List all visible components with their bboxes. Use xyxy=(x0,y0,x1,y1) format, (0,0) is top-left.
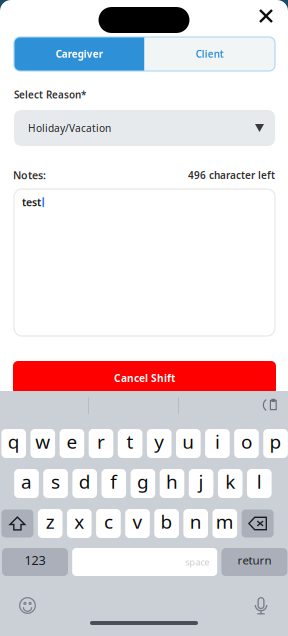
staticText: w xyxy=(35,429,50,454)
staticText: u xyxy=(182,429,194,454)
staticText: Cancel Shift xyxy=(114,371,175,385)
staticText: Caregiver xyxy=(56,47,103,61)
button[interactable]: s xyxy=(43,469,68,498)
staticText: n xyxy=(190,509,202,534)
staticText: b xyxy=(161,509,173,534)
staticText: m xyxy=(216,509,234,534)
button[interactable]: u xyxy=(176,429,201,458)
staticText: s xyxy=(51,469,60,494)
button[interactable]: Client xyxy=(144,37,275,71)
button[interactable]: return xyxy=(221,548,287,576)
staticText: l xyxy=(257,469,262,494)
staticText: y xyxy=(154,429,164,454)
button[interactable]: c xyxy=(96,509,121,538)
staticText: 123 xyxy=(24,551,45,569)
button[interactable]: y xyxy=(147,429,171,458)
staticText: Notes: xyxy=(13,168,46,182)
button[interactable]: x xyxy=(67,509,92,538)
button[interactable]: Dictation xyxy=(253,596,269,615)
button[interactable]: w xyxy=(30,429,55,458)
button[interactable]: f xyxy=(101,469,126,498)
button[interactable]: e xyxy=(60,429,84,458)
button[interactable]: Close xyxy=(253,3,279,29)
button[interactable]: h xyxy=(160,469,184,498)
button[interactable]: m xyxy=(212,509,237,538)
button[interactable]: b xyxy=(154,509,179,538)
staticText: test xyxy=(22,195,41,209)
staticText: i xyxy=(215,429,220,454)
staticText: z xyxy=(46,509,55,534)
button[interactable]: k xyxy=(218,469,242,498)
staticText: t xyxy=(127,429,134,454)
button[interactable]: Delete xyxy=(242,509,274,537)
button[interactable]: Shift xyxy=(1,509,33,537)
staticText: a xyxy=(21,469,32,494)
button[interactable]: Paste xyxy=(260,397,280,413)
button[interactable]: v xyxy=(125,509,150,538)
button[interactable]: Emoji keyboard xyxy=(18,596,37,615)
staticText: h xyxy=(166,469,178,494)
button[interactable]: Cancel Shift xyxy=(13,361,276,395)
button[interactable]: t xyxy=(118,429,142,458)
staticText: q xyxy=(8,429,20,454)
button[interactable]: r xyxy=(89,429,113,458)
staticText: g xyxy=(137,469,149,494)
button[interactable]: n xyxy=(183,509,208,538)
button[interactable]: 123 xyxy=(2,548,68,576)
button[interactable]: o xyxy=(234,429,259,458)
button[interactable]: l xyxy=(247,469,272,498)
staticText: return xyxy=(237,552,271,568)
staticText: Select Reason* xyxy=(14,88,86,101)
staticText: Client xyxy=(196,47,224,61)
button[interactable]: i xyxy=(205,429,230,458)
staticText: 496 character left xyxy=(188,168,275,182)
staticText: v xyxy=(132,509,142,534)
staticText: k xyxy=(225,469,235,494)
button[interactable]: Holiday/Vacation xyxy=(14,110,275,146)
button[interactable]: a xyxy=(14,469,39,498)
staticText: f xyxy=(110,469,117,494)
button[interactable]: Caregiver xyxy=(14,37,144,71)
button[interactable]: p xyxy=(263,429,288,458)
staticText: j xyxy=(199,469,204,494)
staticText: p xyxy=(270,429,282,454)
staticText: r xyxy=(97,429,105,454)
staticText: d xyxy=(79,469,91,494)
staticText: e xyxy=(66,429,77,454)
staticText: x xyxy=(74,509,84,534)
button[interactable]: g xyxy=(131,469,155,498)
button[interactable]: d xyxy=(72,469,97,498)
button[interactable]: q xyxy=(1,429,26,458)
button[interactable]: space xyxy=(72,548,217,576)
staticText: c xyxy=(104,509,113,534)
button[interactable]: z xyxy=(38,509,62,538)
staticText: space xyxy=(185,556,209,568)
staticText: o xyxy=(241,429,252,454)
button[interactable]: j xyxy=(189,469,213,498)
staticText: Holiday/Vacation xyxy=(28,121,111,135)
